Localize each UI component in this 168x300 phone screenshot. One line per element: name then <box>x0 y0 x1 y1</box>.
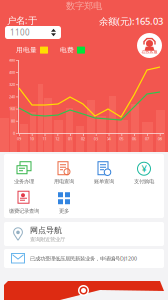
staticText: 1100 <box>10 27 30 38</box>
staticText: 08 <box>158 136 162 141</box>
staticText: ¥ <box>141 162 146 175</box>
staticText: 0 <box>13 130 15 136</box>
staticText: 03 <box>94 136 98 141</box>
staticText: 在线客服 <box>141 49 157 54</box>
staticText: 04 <box>106 136 110 141</box>
staticText: 账单查询 <box>94 178 114 185</box>
button[interactable]: 更多 <box>44 188 84 216</box>
staticText: 320 <box>9 82 15 87</box>
staticText: 用电量 <box>16 46 37 54</box>
staticText: 户名:于 <box>7 14 37 26</box>
staticText: 更多 <box>59 208 69 214</box>
button[interactable]: 账单查询 <box>84 159 124 187</box>
staticText: 240 <box>9 94 15 99</box>
staticText: 07 <box>145 136 149 141</box>
staticText: 已成功受理低压居民新装业务，申请编号DJ1200 <box>30 255 137 262</box>
button[interactable]: 1100 <box>5 26 61 39</box>
staticText: 400 <box>9 69 15 75</box>
button[interactable]: 在线客服 <box>137 33 162 58</box>
button[interactable]: 已成功受理低压居民新装业务，申请编号DJ1200 <box>4 249 164 268</box>
staticText: 10 <box>30 136 34 141</box>
staticText: 11 <box>42 136 46 141</box>
button[interactable]: 网点导航 <box>4 222 164 246</box>
staticText: 电费 <box>60 46 74 54</box>
staticText: 80 <box>11 118 15 124</box>
staticText: 数字郑电 <box>66 0 102 12</box>
button[interactable]: 用电查询 <box>44 159 84 187</box>
staticText: 01 <box>68 136 72 141</box>
staticText: 缴费记录查询 <box>9 208 39 214</box>
staticText: 160 <box>9 106 15 111</box>
staticText: 网点导航 <box>30 225 62 235</box>
staticText: 09 <box>17 136 21 141</box>
staticText: 12 <box>55 136 59 141</box>
button[interactable]: 缴费记录查询 <box>4 188 44 216</box>
staticText: 用电查询 <box>54 178 74 185</box>
staticText: 查询附近营业厅 <box>30 236 65 243</box>
button[interactable]: 业务办理 <box>4 159 44 187</box>
staticText: 02 <box>81 136 85 141</box>
button[interactable]: ¥ <box>124 159 164 187</box>
staticText: 480 <box>9 57 15 63</box>
staticText: 06 <box>132 136 136 141</box>
staticText: 余额(元):165.03 <box>99 15 163 27</box>
staticText: 05 <box>119 136 123 141</box>
staticText: 业务办理 <box>14 178 34 185</box>
staticText: 支付购电 <box>134 178 154 185</box>
